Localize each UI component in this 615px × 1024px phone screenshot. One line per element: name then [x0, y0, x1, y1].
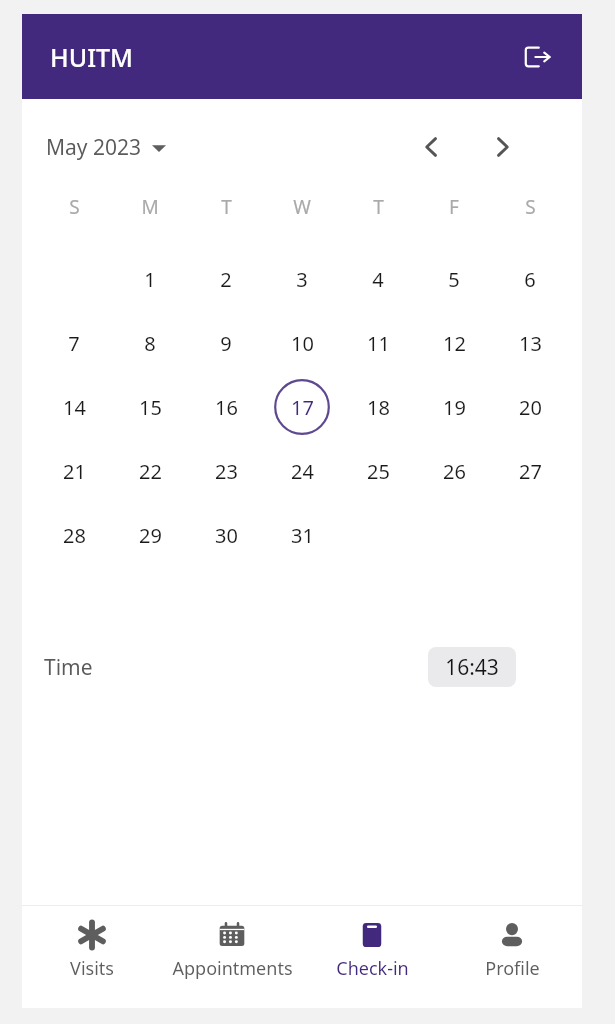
- button[interactable]: 25: [350, 443, 406, 499]
- button[interactable]: Previous month: [410, 125, 454, 169]
- staticText: 25: [367, 458, 390, 485]
- staticText: 18: [367, 394, 390, 421]
- button[interactable]: 19: [426, 379, 482, 435]
- button[interactable]: 16:43: [428, 647, 516, 687]
- button[interactable]: 6: [502, 251, 558, 307]
- button[interactable]: Next month: [480, 125, 524, 169]
- button[interactable]: 31: [274, 507, 330, 563]
- staticText: 26: [443, 458, 466, 485]
- staticText: 1: [144, 266, 156, 293]
- staticText: 8: [144, 330, 156, 357]
- staticText: Time: [44, 653, 93, 682]
- button[interactable]: Appointments: [162, 906, 302, 994]
- button[interactable]: Log out: [514, 33, 562, 81]
- staticText: 2: [220, 266, 232, 293]
- button[interactable]: Visits: [22, 906, 162, 994]
- button[interactable]: 20: [502, 379, 558, 435]
- staticText: T: [221, 194, 232, 220]
- button[interactable]: 17: [274, 379, 330, 435]
- staticText: 28: [63, 522, 86, 549]
- staticText: 12: [443, 330, 466, 357]
- staticText: 31: [291, 522, 314, 549]
- staticText: May 2023: [46, 133, 142, 162]
- staticText: 4: [372, 266, 384, 293]
- staticText: HUITM: [50, 40, 134, 74]
- button[interactable]: 5: [426, 251, 482, 307]
- staticText: Profile: [485, 956, 540, 981]
- button[interactable]: 16: [198, 379, 254, 435]
- staticText: S: [69, 194, 80, 220]
- staticText: 15: [139, 394, 162, 421]
- staticText: Visits: [70, 956, 114, 981]
- button[interactable]: 10: [274, 315, 330, 371]
- staticText: T: [373, 194, 384, 220]
- button[interactable]: 24: [274, 443, 330, 499]
- button[interactable]: May 2023: [46, 133, 166, 162]
- button[interactable]: 13: [502, 315, 558, 371]
- staticText: 20: [519, 394, 542, 421]
- staticText: 22: [139, 458, 162, 485]
- button[interactable]: 11: [350, 315, 406, 371]
- button[interactable]: 23: [198, 443, 254, 499]
- button[interactable]: 26: [426, 443, 482, 499]
- staticText: 24: [291, 458, 314, 485]
- button[interactable]: 18: [350, 379, 406, 435]
- button[interactable]: 1: [122, 251, 178, 307]
- button[interactable]: 9: [198, 315, 254, 371]
- button[interactable]: Check-in: [302, 906, 442, 994]
- staticText: 16:43: [445, 653, 499, 682]
- staticText: S: [525, 194, 536, 220]
- button[interactable]: 15: [122, 379, 178, 435]
- staticText: 14: [63, 394, 86, 421]
- staticText: 13: [519, 330, 542, 357]
- button[interactable]: 2: [198, 251, 254, 307]
- staticText: 29: [139, 522, 162, 549]
- staticText: 5: [448, 266, 460, 293]
- button[interactable]: 27: [502, 443, 558, 499]
- staticText: 3: [296, 266, 308, 293]
- staticText: 11: [367, 330, 390, 357]
- button[interactable]: 21: [46, 443, 102, 499]
- button[interactable]: 4: [350, 251, 406, 307]
- staticText: 27: [519, 458, 542, 485]
- staticText: 7: [68, 330, 80, 357]
- staticText: 21: [63, 458, 86, 485]
- button[interactable]: 30: [198, 507, 254, 563]
- staticText: Appointments: [172, 956, 293, 981]
- button[interactable]: 3: [274, 251, 330, 307]
- staticText: 30: [215, 522, 238, 549]
- button[interactable]: 14: [46, 379, 102, 435]
- staticText: 19: [443, 394, 466, 421]
- staticText: 16: [215, 394, 238, 421]
- staticText: F: [449, 194, 459, 220]
- button[interactable]: 22: [122, 443, 178, 499]
- staticText: 17: [291, 394, 314, 421]
- button[interactable]: 28: [46, 507, 102, 563]
- button[interactable]: Profile: [442, 906, 582, 994]
- staticText: M: [141, 194, 159, 220]
- staticText: W: [293, 194, 311, 220]
- staticText: Check-in: [336, 956, 409, 981]
- button[interactable]: 29: [122, 507, 178, 563]
- button[interactable]: 8: [122, 315, 178, 371]
- staticText: 6: [524, 266, 536, 293]
- button[interactable]: 12: [426, 315, 482, 371]
- button[interactable]: 7: [46, 315, 102, 371]
- staticText: 23: [215, 458, 238, 485]
- staticText: 10: [291, 330, 314, 357]
- staticText: 9: [220, 330, 232, 357]
